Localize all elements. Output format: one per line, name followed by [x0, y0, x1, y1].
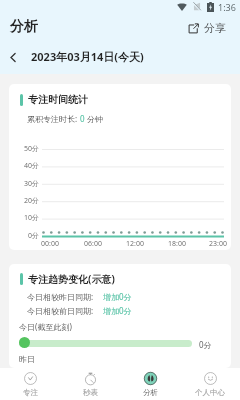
- staticText: 今日相较前日同期:: [27, 305, 94, 316]
- staticText: 今日(截至此刻): [19, 321, 72, 332]
- staticText: 累积专注时长:: [27, 113, 80, 124]
- staticText: 40分: [24, 161, 40, 171]
- staticText: 增加0分: [103, 305, 132, 316]
- staticText: 专注时间统计: [28, 93, 88, 106]
- staticText: 00:00: [41, 239, 59, 249]
- staticText: 10分: [24, 213, 40, 223]
- button[interactable]: 分享: [185, 19, 240, 37]
- staticText: 0分: [28, 231, 40, 241]
- staticText: 2023年03月14日(今天): [31, 49, 144, 64]
- staticText: 分析: [143, 388, 158, 397]
- staticText: 20分: [24, 196, 40, 206]
- staticText: 12:00: [126, 239, 144, 249]
- staticText: 0: [80, 113, 85, 124]
- staticText: 分析: [10, 18, 38, 36]
- staticText: 0分: [199, 339, 212, 350]
- staticText: 18:00: [168, 239, 186, 249]
- button[interactable]: 个人中心: [180, 370, 240, 399]
- staticText: 50分: [24, 144, 40, 154]
- staticText: 06:00: [84, 239, 102, 249]
- staticText: 专注趋势变化(示意): [28, 272, 115, 286]
- button[interactable]: 分析: [120, 370, 180, 399]
- staticText: 分钟: [85, 113, 104, 124]
- staticText: 增加0分: [103, 291, 132, 302]
- staticText: 1:36: [218, 1, 236, 13]
- button[interactable]: Previous day: [3, 47, 23, 67]
- button[interactable]: 专注: [0, 370, 60, 399]
- button[interactable]: 秒表: [60, 370, 120, 399]
- staticText: 23:00: [209, 239, 227, 249]
- staticText: 30分: [24, 179, 40, 189]
- staticText: 分享: [204, 21, 226, 35]
- staticText: 昨日: [19, 354, 35, 364]
- staticText: 个人中心: [195, 388, 225, 397]
- staticText: 秒表: [83, 388, 98, 397]
- staticText: 专注: [23, 388, 38, 397]
- staticText: 今日相较昨日同期:: [27, 291, 94, 302]
